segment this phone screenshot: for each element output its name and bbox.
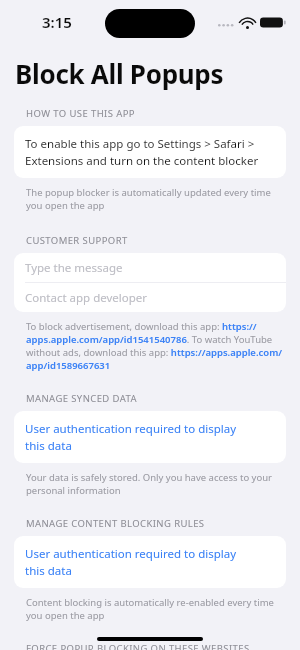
button[interactable]: Contact app developer	[14, 283, 286, 312]
staticText: Block All Popups	[15, 56, 224, 91]
staticText: To enable this app go to Settings > Safa…	[25, 136, 259, 168]
button[interactable]: To enable this app go to Settings > Safa…	[14, 126, 286, 178]
staticText: User authentication required to display …	[25, 546, 237, 578]
staticText: Content blocking is automatically re-ena…	[26, 596, 274, 622]
button[interactable]: Type the message	[14, 253, 286, 282]
staticText: User authentication required to display …	[25, 421, 237, 453]
button[interactable]: User authentication required to display …	[14, 411, 286, 463]
staticText: MANAGE SYNCED DATA	[26, 392, 137, 405]
staticText: CUSTOMER SUPPORT	[26, 234, 128, 247]
button[interactable]: To block advertisement, download this ap…	[26, 320, 286, 372]
staticText: FORCE POPUP BLOCKING ON THESE WEBSITES	[26, 642, 250, 650]
staticText: Contact app developer	[25, 290, 148, 306]
staticText: Your data is safely stored. Only you hav…	[26, 471, 272, 497]
staticText: The popup blocker is automatically updat…	[26, 186, 271, 212]
staticText: HOW TO USE THIS APP	[26, 107, 135, 120]
staticText: MANAGE CONTENT BLOCKING RULES	[26, 517, 205, 530]
button[interactable]: User authentication required to display …	[14, 536, 286, 588]
staticText: Type the message	[25, 260, 123, 276]
staticText: 3:15	[42, 12, 72, 32]
